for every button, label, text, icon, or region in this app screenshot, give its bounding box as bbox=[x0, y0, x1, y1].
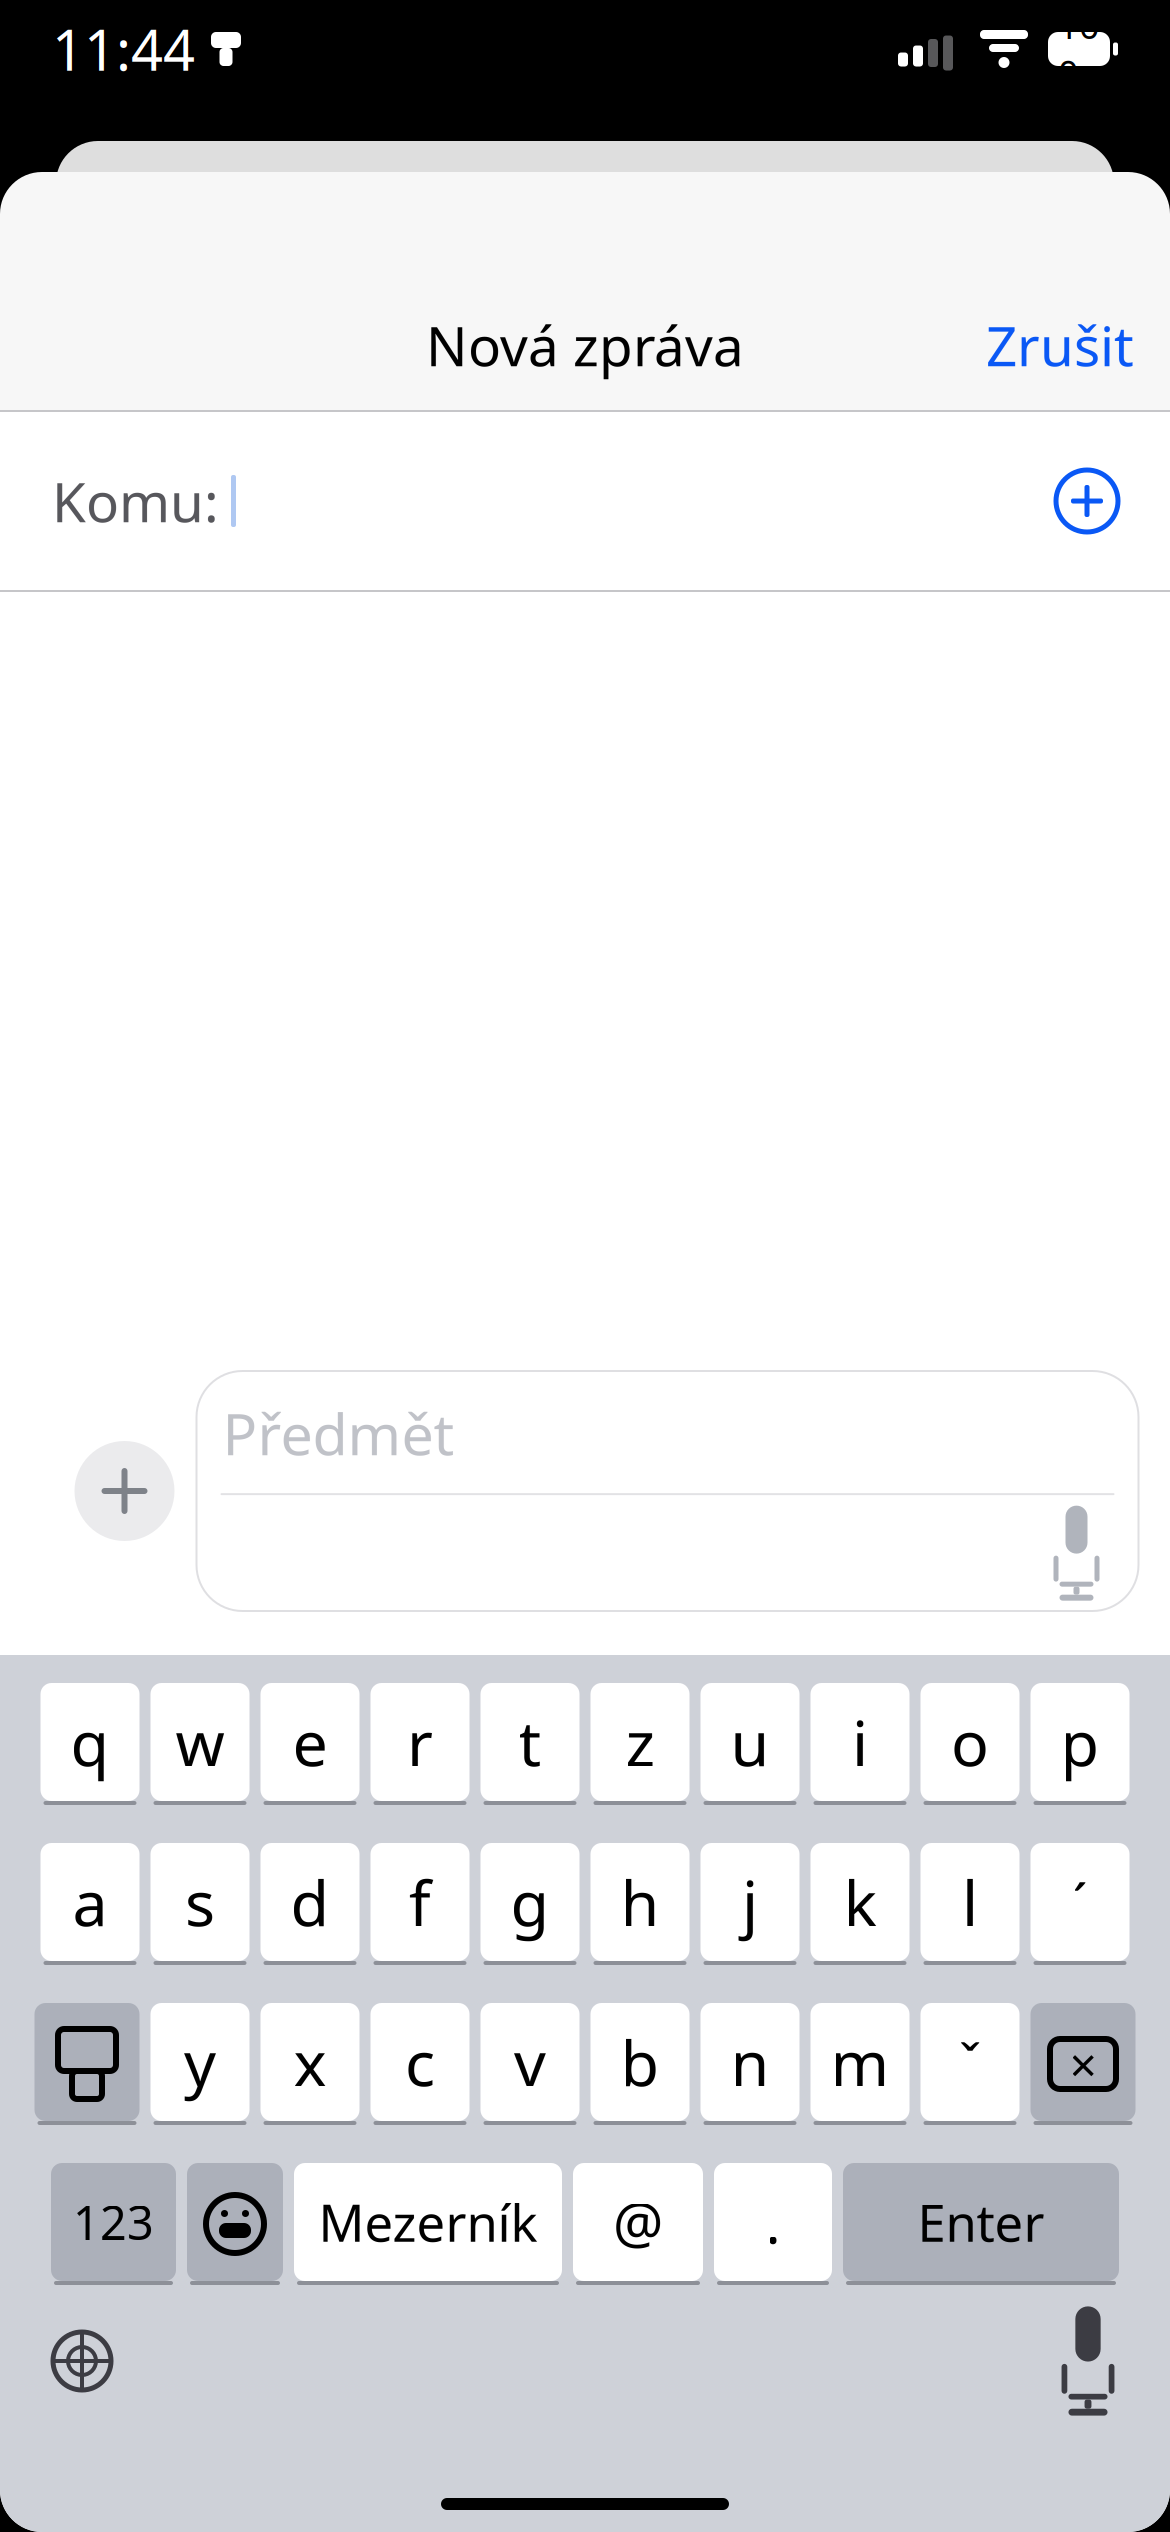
staticText: h bbox=[620, 1860, 659, 1944]
button[interactable]: e bbox=[260, 1683, 359, 1805]
staticText: ˇ bbox=[959, 2027, 981, 2097]
button[interactable]: d bbox=[260, 1843, 359, 1965]
button[interactable]: c bbox=[370, 2003, 469, 2125]
staticText: s bbox=[185, 1860, 215, 1944]
button[interactable]: Předmět bbox=[174, 1371, 1138, 1611]
staticText: a bbox=[72, 1860, 107, 1944]
button[interactable]: i bbox=[810, 1683, 909, 1805]
staticText: u bbox=[730, 1700, 769, 1784]
staticText: v bbox=[514, 2020, 546, 2104]
staticText: Předmět bbox=[222, 1395, 454, 1471]
button[interactable]: k bbox=[810, 1843, 909, 1965]
staticText: × bbox=[1069, 2032, 1096, 2096]
button[interactable]: Add recipient bbox=[1038, 452, 1136, 550]
staticText: d bbox=[290, 1860, 329, 1944]
staticText: Mezerník bbox=[318, 2188, 537, 2256]
button[interactable]: g bbox=[480, 1843, 579, 1965]
button[interactable]: Delete bbox=[1030, 2003, 1135, 2125]
button[interactable]: Enter bbox=[843, 2163, 1119, 2285]
staticText: j bbox=[742, 1860, 758, 1944]
staticText: o bbox=[951, 1700, 989, 1784]
staticText: r bbox=[407, 1700, 433, 1784]
staticText: ´ bbox=[1072, 1867, 1087, 1937]
button[interactable]: x bbox=[260, 2003, 359, 2125]
staticText: w bbox=[175, 1700, 224, 1784]
staticText: i bbox=[852, 1700, 868, 1784]
staticText: 123 bbox=[73, 2191, 154, 2253]
button[interactable]: @ bbox=[573, 2163, 703, 2285]
staticText: n bbox=[730, 2020, 769, 2104]
button[interactable]: y bbox=[150, 2003, 249, 2125]
button[interactable]: n bbox=[700, 2003, 799, 2125]
button[interactable]: m bbox=[810, 2003, 909, 2125]
button[interactable]: Add attachment bbox=[74, 1441, 174, 1541]
button[interactable]: ´ bbox=[1030, 1843, 1129, 1965]
staticText: m bbox=[830, 2020, 889, 2104]
staticText: c bbox=[405, 2020, 435, 2104]
staticText: 11:44 bbox=[52, 12, 195, 86]
button[interactable]: Next keyboard bbox=[26, 2305, 138, 2417]
button[interactable]: a bbox=[40, 1843, 139, 1965]
button[interactable]: Zrušit bbox=[968, 295, 1152, 395]
staticText: x bbox=[293, 2020, 326, 2104]
button[interactable]: Emoji bbox=[187, 2163, 283, 2285]
button[interactable]: j bbox=[700, 1843, 799, 1965]
button[interactable]: Mezerník bbox=[294, 2163, 562, 2285]
button[interactable]: b bbox=[590, 2003, 689, 2125]
button[interactable]: h bbox=[590, 1843, 689, 1965]
button[interactable]: Dictation bbox=[1032, 2305, 1144, 2417]
button[interactable]: t bbox=[480, 1683, 579, 1805]
button[interactable]: f bbox=[370, 1843, 469, 1965]
staticText: b bbox=[620, 2020, 659, 2104]
staticText: @ bbox=[613, 2185, 663, 2259]
staticText: q bbox=[70, 1700, 109, 1784]
button[interactable]: w bbox=[150, 1683, 249, 1805]
staticText: t bbox=[518, 1700, 541, 1784]
staticText: l bbox=[962, 1860, 978, 1944]
button[interactable]: q bbox=[40, 1683, 139, 1805]
staticText: k bbox=[843, 1860, 876, 1944]
button[interactable]: p bbox=[1030, 1683, 1129, 1805]
staticText: z bbox=[625, 1700, 654, 1784]
button[interactable]: v bbox=[480, 2003, 579, 2125]
staticText: y bbox=[184, 2020, 216, 2104]
button[interactable]: 123 bbox=[51, 2163, 176, 2285]
staticText: g bbox=[510, 1860, 549, 1944]
button[interactable]: u bbox=[700, 1683, 799, 1805]
staticText: . bbox=[765, 2185, 780, 2259]
button[interactable]: z bbox=[590, 1683, 689, 1805]
button[interactable]: o bbox=[920, 1683, 1019, 1805]
staticText: 100 bbox=[1058, 1, 1100, 97]
button[interactable]: Shift bbox=[34, 2003, 139, 2125]
button[interactable]: ˇ bbox=[920, 2003, 1019, 2125]
button[interactable]: l bbox=[920, 1843, 1019, 1965]
staticText: Enter bbox=[917, 2188, 1044, 2256]
staticText: Komu: bbox=[52, 465, 219, 537]
staticText: e bbox=[292, 1700, 327, 1784]
button[interactable]: s bbox=[150, 1843, 249, 1965]
button[interactable]: r bbox=[370, 1683, 469, 1805]
staticText: Zrušit bbox=[986, 309, 1134, 381]
staticText: f bbox=[409, 1860, 431, 1944]
staticText: p bbox=[1060, 1700, 1099, 1784]
staticText: Nová zpráva bbox=[426, 309, 744, 381]
button[interactable]: . bbox=[714, 2163, 832, 2285]
